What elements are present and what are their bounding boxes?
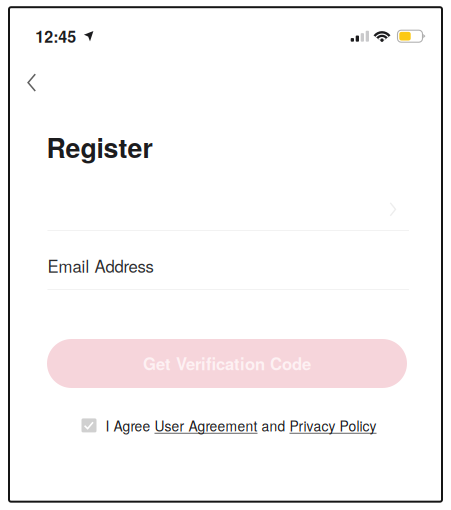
button[interactable]: Back	[10, 62, 54, 104]
button[interactable]: Privacy Policy	[289, 415, 376, 435]
staticText: and	[257, 415, 289, 435]
staticText: Register	[46, 128, 152, 166]
staticText: User Agreement	[154, 415, 257, 435]
button[interactable]: Get Verification Code	[47, 339, 407, 388]
staticText: 12:45	[35, 25, 76, 48]
staticText: Get Verification Code	[143, 352, 311, 375]
button[interactable]: I Agree	[81, 418, 105, 432]
staticText: I Agree	[105, 415, 154, 435]
staticText: Email Address	[47, 253, 153, 277]
button[interactable]: Email Address	[47, 257, 409, 290]
button[interactable]: User Agreement	[154, 415, 257, 435]
staticText: Privacy Policy	[289, 415, 376, 435]
